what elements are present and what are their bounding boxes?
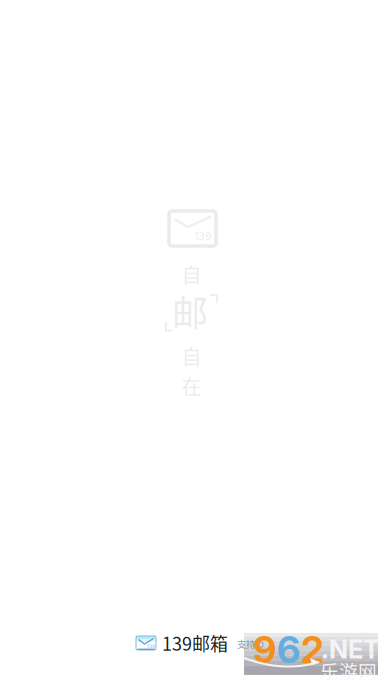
staticText: 6 [277, 627, 300, 672]
staticText: 139 [147, 643, 155, 649]
staticText: 自 [181, 259, 201, 288]
staticText: 2 [301, 627, 324, 672]
staticText: 139邮箱 [162, 630, 228, 656]
staticText: .NET [321, 634, 380, 665]
staticText: 在 [181, 371, 201, 400]
staticText: 自 [181, 341, 201, 370]
staticText: 9 [253, 627, 276, 672]
staticText: 139 [194, 230, 212, 243]
button[interactable]: 139 [133, 627, 231, 659]
staticText: 邮 [172, 285, 208, 337]
staticText: 支持ip [237, 637, 264, 650]
staticText: 乐游网 [320, 657, 377, 682]
